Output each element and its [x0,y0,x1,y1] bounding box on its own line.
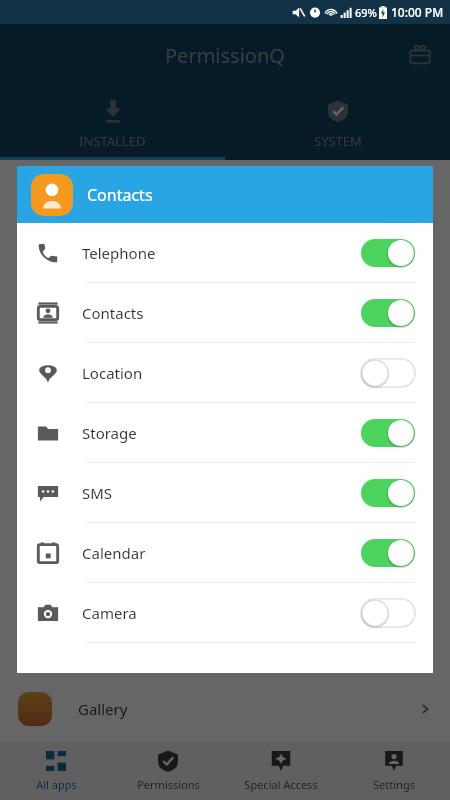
staticText: Contacts [82,303,144,323]
button[interactable]: Enabled [361,238,415,268]
staticText: Telephone [82,243,156,263]
button[interactable]: Calendar [17,523,433,583]
staticText: Permissions [137,777,200,792]
staticText: 10:00 PM [391,4,444,20]
button[interactable]: SMS [17,463,433,523]
button[interactable]: INSTALLED [0,86,225,160]
staticText: Galaxy Store [78,641,167,661]
staticText: Settings [373,777,415,792]
button[interactable]: Enabled [361,538,415,568]
button[interactable]: Location [17,343,433,403]
staticText: Special Access [244,777,318,792]
button[interactable]: Disabled [361,358,415,388]
button[interactable]: Telephone [17,223,433,283]
staticText: Storage [82,423,137,443]
button[interactable]: Enabled [361,418,415,448]
button[interactable]: Contacts [17,283,433,343]
button[interactable]: Gallery [0,680,450,738]
staticText: SYSTEM [314,132,362,150]
button[interactable]: Galaxy Store [0,622,450,680]
staticText: Location [82,363,143,383]
button[interactable]: Storage [17,403,433,463]
staticText: PermissionQ [165,42,285,69]
staticText: 69% [355,5,377,20]
staticText: SMS [82,483,113,503]
button[interactable]: Settings [337,742,450,800]
button[interactable]: Contacts [17,166,433,223]
button[interactable]: Rewards [402,37,438,73]
staticText: Calendar [82,543,146,563]
staticText: Contacts [87,184,153,206]
button[interactable]: Enabled [361,478,415,508]
button[interactable]: Camera [17,583,433,643]
staticText: All apps [36,777,77,792]
staticText: Camera [82,603,137,623]
staticText: INSTALLED [79,132,146,150]
button[interactable]: Disabled [361,598,415,628]
button[interactable]: All apps [0,742,112,800]
staticText: Gallery [78,699,128,719]
button[interactable]: Permissions [112,742,224,800]
button[interactable]: Enabled [361,298,415,328]
button[interactable]: Special Access [224,742,337,800]
button[interactable]: SYSTEM [225,86,450,160]
